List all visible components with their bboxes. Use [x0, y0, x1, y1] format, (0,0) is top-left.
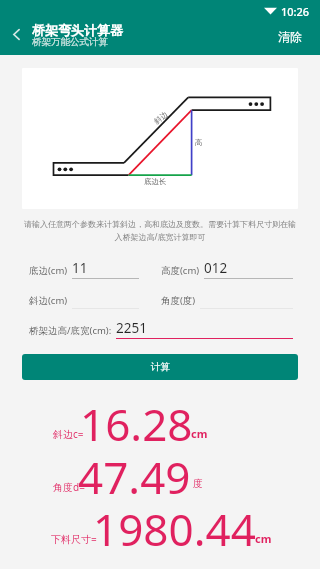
staticText: 47.49 — [78, 447, 191, 500]
staticText: 1980.44 — [93, 499, 256, 552]
staticText: 请输入任意两个参数来计算斜边，高和底边及度数。需要计算下料尺寸则在输入桥架边高/… — [21, 219, 299, 243]
staticText: 桥架边高/底宽(cm): — [29, 324, 112, 337]
staticText: 桥架万能公式计算 — [32, 36, 108, 48]
staticText: 高度(cm) — [161, 264, 200, 277]
staticText: 斜边(cm) — [29, 294, 68, 307]
staticText: 角度(度) — [161, 294, 196, 307]
staticText: 底边长 — [144, 177, 167, 186]
button[interactable]: 斜边c= — [0, 398, 320, 451]
staticText: 计算 — [151, 361, 170, 373]
staticText: 10:26 — [281, 4, 310, 19]
staticText: 11 — [72, 259, 88, 277]
staticText: 16.28 — [80, 394, 193, 447]
staticText: 角度d= — [53, 480, 85, 494]
button[interactable]: 桥架边高/底宽(cm): — [29, 319, 293, 339]
button[interactable]: 清除 — [274, 26, 306, 47]
button[interactable]: 斜边(cm) — [29, 289, 139, 309]
staticText: 度 — [193, 477, 203, 490]
staticText: 下料尺寸= — [51, 532, 97, 546]
button[interactable]: 角度(度) — [161, 289, 293, 309]
staticText: 桥架弯头计算器 — [32, 22, 123, 38]
staticText: cm — [191, 426, 208, 441]
staticText: 清除 — [278, 29, 302, 44]
button[interactable]: 角度d= — [0, 451, 320, 504]
button[interactable]: 下料尺寸= — [0, 503, 320, 556]
staticText: 高 — [195, 138, 203, 147]
button[interactable]: 高度(cm) — [161, 259, 293, 279]
button[interactable]: 底边(cm) — [29, 259, 139, 279]
button[interactable]: 计算 — [22, 354, 298, 380]
button[interactable]: Back — [3, 21, 29, 47]
staticText: 斜边 — [152, 110, 170, 126]
staticText: cm — [255, 531, 272, 546]
staticText: 012 — [204, 259, 228, 277]
staticText: 斜边c= — [53, 427, 84, 441]
staticText: 底边(cm) — [29, 264, 68, 277]
staticText: 2251 — [116, 319, 147, 337]
